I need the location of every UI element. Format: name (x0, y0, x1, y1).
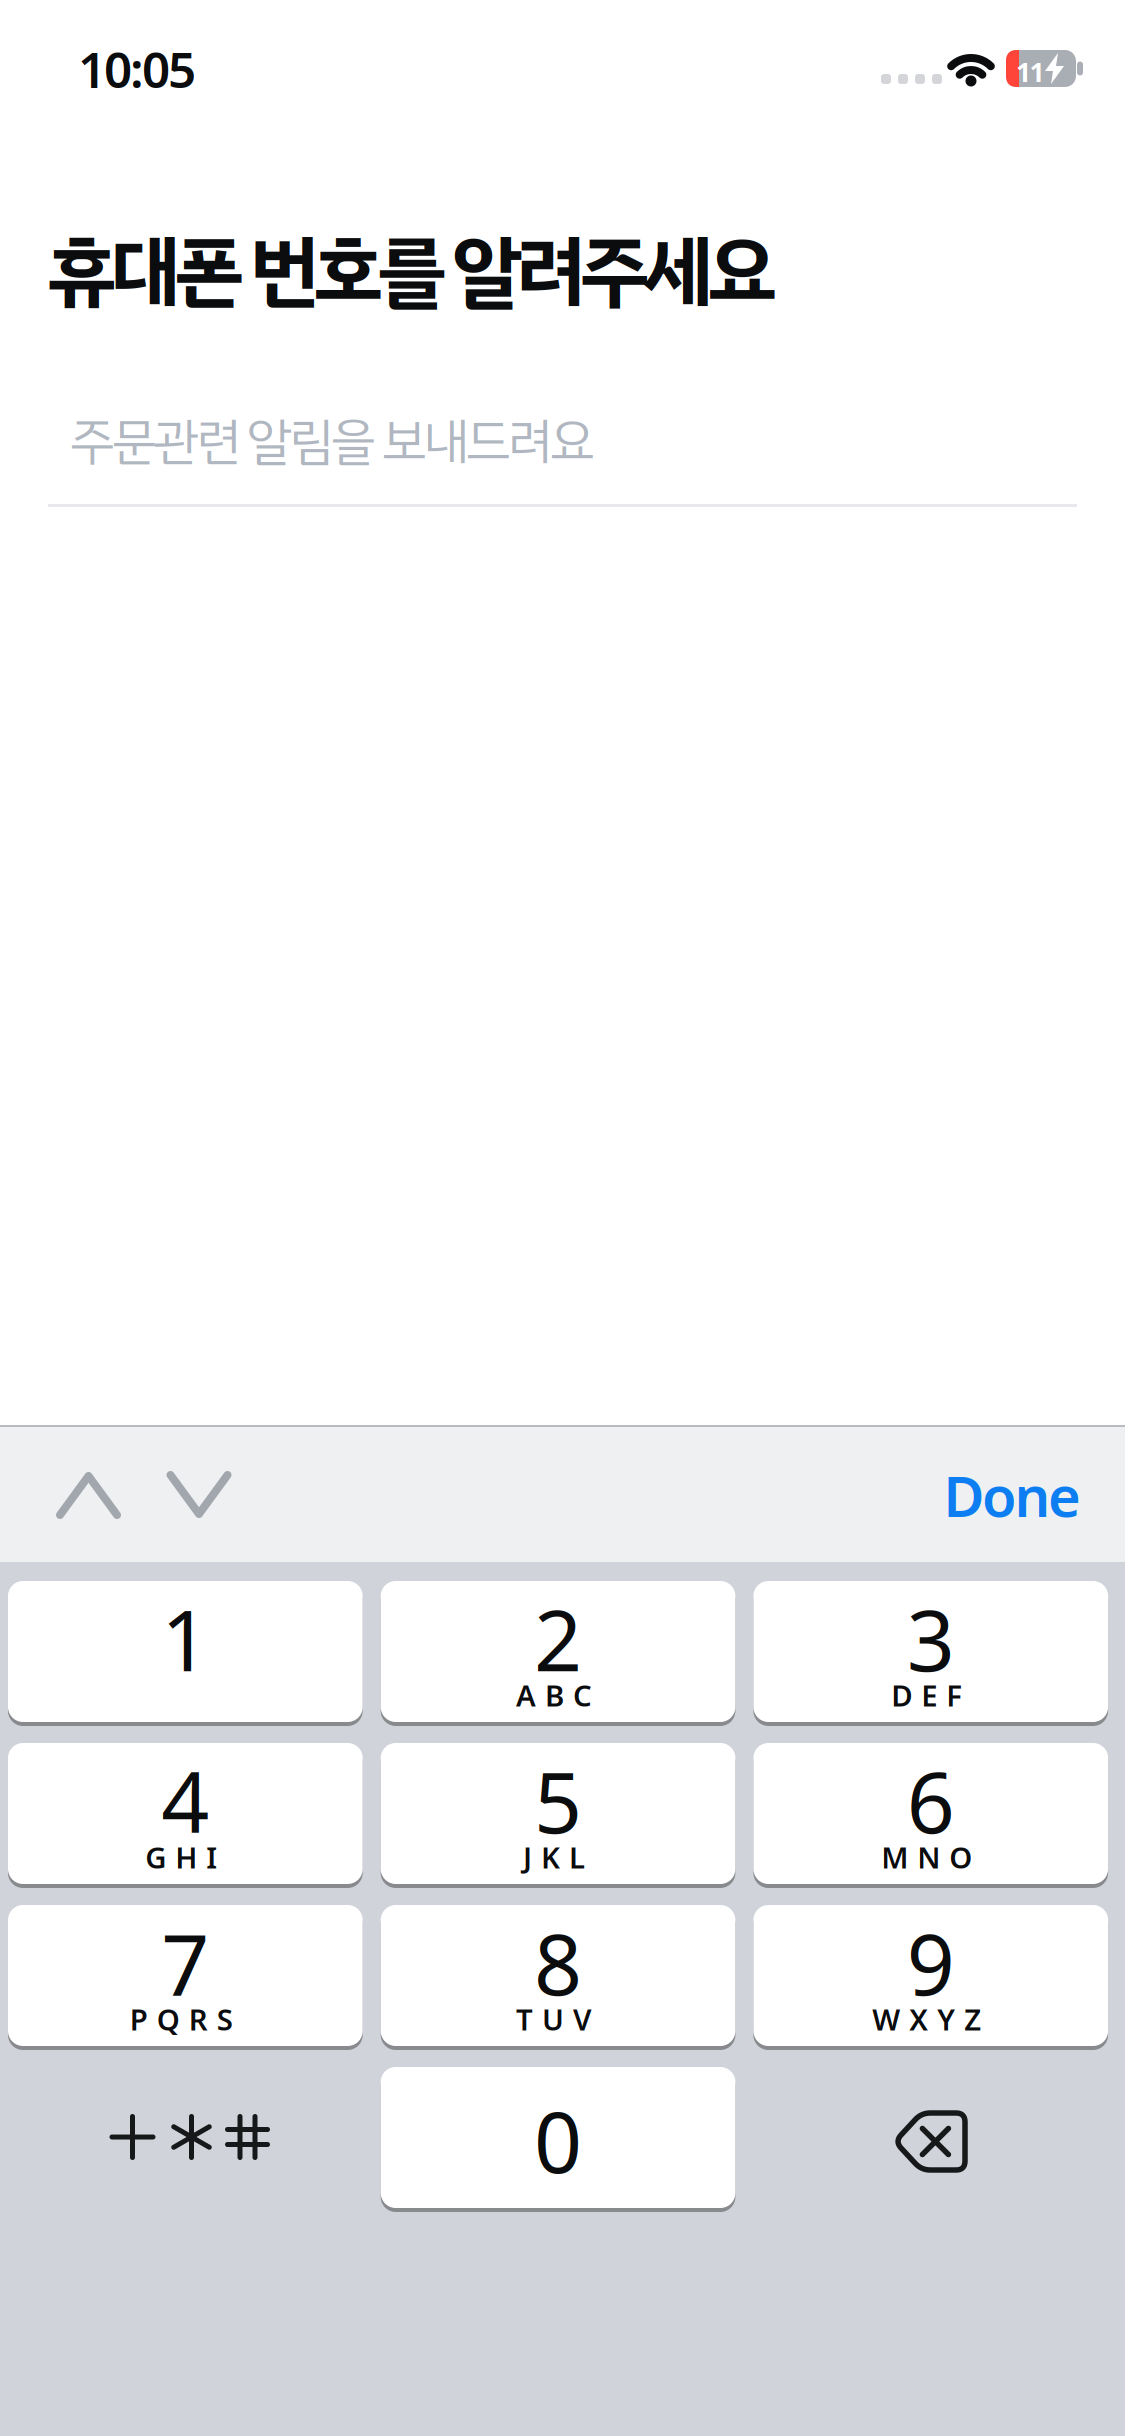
staticText: GHI (145, 1837, 217, 1876)
button[interactable]: 3 (753, 1581, 1108, 1722)
staticText: DEF (891, 1675, 962, 1714)
staticText: 10:05 (78, 36, 196, 101)
button[interactable]: 8 (381, 1905, 735, 2046)
button[interactable]: 6 (753, 1743, 1108, 1884)
button[interactable]: 1 (8, 1581, 363, 1722)
button[interactable]: 9 (753, 1905, 1108, 2046)
staticText: 5 (534, 1745, 582, 1856)
button[interactable]: Plus star hash (8, 2067, 363, 2208)
staticText: Done (943, 1458, 1081, 1532)
button[interactable]: Previous field (38, 1445, 138, 1545)
button[interactable]: 7 (8, 1905, 363, 2046)
button[interactable]: Delete (753, 2067, 1108, 2208)
button[interactable]: 주문관련 알림을 보내드려요 (48, 400, 1077, 507)
staticText: 2 (534, 1583, 582, 1694)
staticText: 4 (161, 1745, 209, 1856)
staticText: ABC (516, 1675, 592, 1714)
staticText: 1 (161, 1583, 209, 1694)
staticText: 7 (161, 1907, 209, 2018)
staticText: 8 (534, 1907, 582, 2018)
staticText: 0 (534, 2085, 582, 2196)
staticText: MNO (881, 1837, 972, 1876)
staticText: JKL (523, 1837, 585, 1876)
staticText: PQRS (130, 1999, 233, 2038)
staticText: WXYZ (872, 1999, 981, 2038)
button[interactable]: Next field (149, 1445, 249, 1545)
staticText: 주문관련 알림을 보내드려요 (70, 404, 595, 479)
button[interactable]: Done (943, 1438, 1125, 1552)
staticText: 휴대폰 번호를 알려주세요 (47, 213, 777, 330)
button[interactable]: 5 (381, 1743, 735, 1884)
staticText: TUV (516, 1999, 592, 2038)
staticText: 9 (907, 1907, 955, 2018)
staticText: 3 (907, 1583, 955, 1694)
button[interactable]: 4 (8, 1743, 363, 1884)
staticText: 11 (1016, 54, 1044, 89)
button[interactable]: 2 (381, 1581, 735, 1722)
button[interactable]: 0 (381, 2067, 735, 2208)
staticText: 6 (907, 1745, 955, 1856)
